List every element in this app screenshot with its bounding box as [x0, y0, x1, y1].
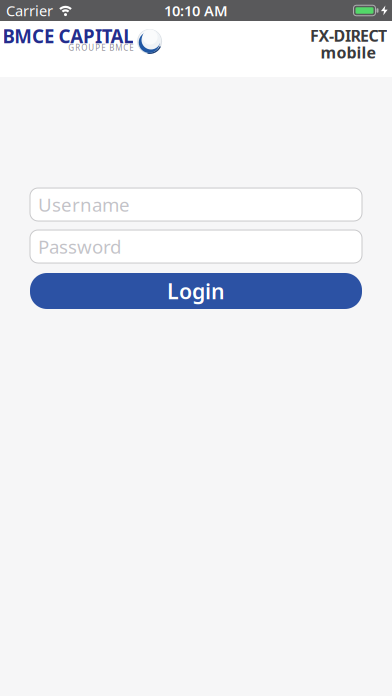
- staticText: GROUPE BMCE: [68, 42, 133, 53]
- staticText: BMCE CAPITAL: [2, 23, 133, 48]
- staticText: Login: [167, 277, 225, 305]
- button[interactable]: Password: [30, 230, 362, 263]
- button[interactable]: Username: [30, 188, 362, 221]
- staticText: 10:10 AM: [164, 1, 228, 20]
- staticText: Password: [38, 234, 121, 259]
- button[interactable]: Login: [30, 273, 362, 309]
- staticText: mobile: [320, 42, 376, 63]
- staticText: Username: [38, 192, 130, 217]
- staticText: Carrier: [6, 1, 53, 20]
- staticText: FX-DIRECT: [310, 25, 387, 46]
